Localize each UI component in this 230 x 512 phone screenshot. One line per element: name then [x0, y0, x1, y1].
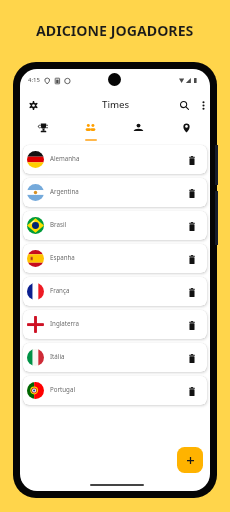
button[interactable]: Itália [23, 343, 207, 372]
staticText: Times [102, 98, 130, 111]
staticText: Inglaterra [50, 319, 79, 327]
button[interactable]: Mais opções [194, 96, 210, 114]
button[interactable]: Excluir Brasil [185, 219, 199, 233]
staticText: Espanha [50, 253, 75, 261]
button[interactable]: Excluir Inglaterra [185, 318, 199, 332]
button[interactable]: Portugal [23, 376, 207, 405]
button[interactable]: Times [67, 118, 114, 142]
button[interactable]: Adicionar time [177, 447, 203, 473]
button[interactable]: Espanha [23, 244, 207, 273]
button[interactable]: Excluir França [185, 285, 199, 299]
staticText: Brasil [50, 220, 67, 228]
button[interactable]: Jogadores [114, 118, 162, 142]
button[interactable]: Inglaterra [23, 310, 207, 339]
button[interactable]: Argentina [23, 178, 207, 207]
button[interactable]: Campeonatos [20, 118, 67, 142]
button[interactable]: Excluir Alemanha [185, 153, 199, 167]
button[interactable]: Alemanha [23, 145, 207, 174]
staticText: ADICIONE JOGADORES [36, 21, 194, 40]
staticText: França [50, 286, 70, 294]
staticText: Itália [50, 352, 65, 360]
staticText: Alemanha [50, 154, 80, 162]
button[interactable]: Pesquisar [175, 96, 193, 114]
button[interactable]: França [23, 277, 207, 306]
button[interactable]: Configurações [24, 96, 42, 114]
button[interactable]: Excluir Argentina [185, 186, 199, 200]
staticText: Argentina [50, 187, 79, 195]
button[interactable]: Brasil [23, 211, 207, 240]
button[interactable]: Locais [162, 118, 210, 142]
button[interactable]: Excluir Portugal [185, 384, 199, 398]
button[interactable]: Excluir Itália [185, 351, 199, 365]
staticText: Portugal [50, 385, 75, 393]
staticText: 4:15 [28, 76, 40, 84]
button[interactable]: Excluir Espanha [185, 252, 199, 266]
